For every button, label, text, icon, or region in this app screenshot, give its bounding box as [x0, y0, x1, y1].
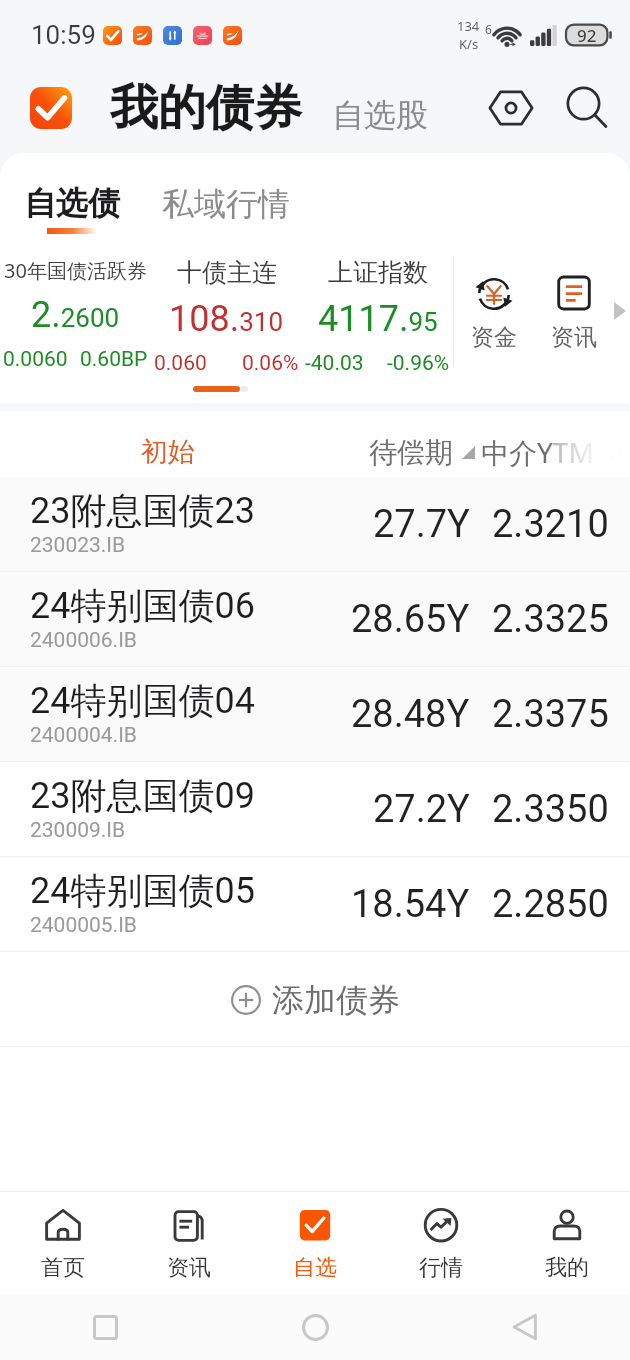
staticText: 我的	[545, 1254, 589, 1282]
button[interactable]: 24特别国债04	[0, 667, 630, 762]
staticText: 中介YTM	[481, 433, 594, 471]
staticText: 2.2600	[31, 294, 120, 336]
staticText: -0.96%	[387, 351, 450, 376]
button[interactable]: 添加债券	[0, 952, 630, 1047]
button[interactable]: 我的债券	[110, 78, 302, 138]
staticText: 初始	[141, 435, 195, 469]
button[interactable]: 资讯	[126, 1192, 252, 1294]
button[interactable]: 23附息国债23	[0, 477, 630, 572]
button[interactable]: 自选	[252, 1192, 378, 1294]
staticText: 自选	[293, 1254, 337, 1282]
button[interactable]: App logo	[30, 87, 72, 129]
staticText: 0.0060	[3, 347, 68, 372]
staticText: 首页	[41, 1254, 85, 1282]
button[interactable]: 资金	[454, 245, 534, 352]
staticText: 134	[457, 17, 480, 35]
button[interactable]: 首页	[0, 1192, 126, 1294]
button[interactable]: 30年国债活跃券	[0, 245, 151, 403]
staticText: 2400005.IB	[30, 913, 137, 938]
button[interactable]: 上证指数	[302, 245, 453, 403]
staticText: 2.2850	[492, 882, 609, 927]
staticText: 108.310	[169, 298, 284, 340]
staticText: 资讯	[551, 323, 597, 352]
staticText: 92	[577, 24, 597, 47]
button[interactable]: 行情	[378, 1192, 504, 1294]
staticText: 2.3325	[492, 597, 609, 642]
staticText: K/s	[459, 35, 479, 53]
staticText: 27.2Y	[373, 787, 470, 832]
staticText: 待偿期	[369, 435, 453, 470]
staticText: 10:59	[31, 20, 96, 50]
staticText: 资金	[471, 323, 517, 352]
staticText: 6	[485, 21, 492, 37]
button[interactable]: 24特别国债05	[0, 857, 630, 952]
staticText: 18.54Y	[351, 882, 470, 927]
staticText: 行情	[419, 1254, 463, 1282]
staticText: 2.3210	[492, 502, 609, 547]
staticText: 24特别国债05	[30, 868, 255, 913]
button[interactable]: Search	[560, 81, 614, 135]
staticText: 十债主连	[177, 257, 277, 288]
staticText: 230023.IB	[30, 533, 126, 558]
button[interactable]: 24特别国债06	[0, 572, 630, 667]
staticText: 230009.IB	[30, 818, 126, 843]
staticText: 上证指数	[328, 257, 428, 288]
staticText: 私域行情	[162, 184, 290, 224]
staticText: 23附息国债23	[30, 488, 255, 533]
button[interactable]: 资讯	[534, 245, 614, 352]
button[interactable]: 私域行情	[162, 153, 290, 224]
button[interactable]: 我的	[504, 1192, 630, 1294]
staticText: 2400004.IB	[30, 723, 137, 748]
staticText: 0.060	[154, 351, 207, 376]
button[interactable]: 初始	[0, 427, 335, 477]
staticText: 27.7Y	[373, 502, 470, 547]
staticText: 2.3375	[492, 692, 609, 737]
staticText: 23附息国债09	[30, 773, 255, 818]
staticText: 28.48Y	[351, 692, 470, 737]
button[interactable]: 十债主连	[151, 245, 302, 403]
staticText: 24特别国债04	[30, 678, 255, 723]
staticText: 0.06%	[242, 351, 299, 376]
button[interactable]: Scan	[484, 81, 538, 135]
staticText: 30年国债活跃券	[4, 257, 147, 284]
staticText: 2.3350	[492, 787, 609, 832]
staticText: 4117.95	[318, 298, 438, 340]
button[interactable]: 自选债	[24, 153, 120, 234]
staticText: -40.03	[305, 351, 364, 376]
staticText: 28.65Y	[351, 597, 470, 642]
staticText: 0.60BP	[80, 347, 148, 372]
staticText: 24特别国债06	[30, 583, 255, 628]
staticText: 资讯	[167, 1254, 211, 1282]
button[interactable]: 23附息国债09	[0, 762, 630, 857]
staticText: 自选债	[24, 183, 120, 223]
staticText: 2400006.IB	[30, 628, 137, 653]
button[interactable]: 自选股	[332, 95, 428, 135]
staticText: 添加债券	[272, 980, 400, 1020]
